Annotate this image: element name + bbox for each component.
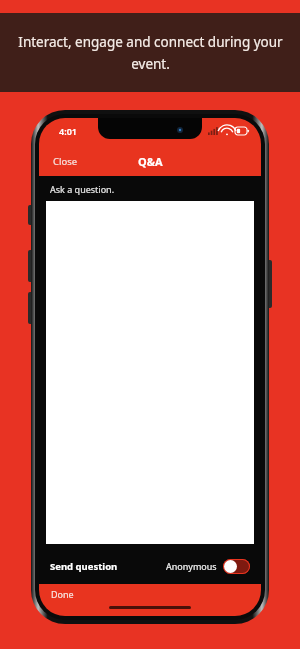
staticText: Close [53, 155, 78, 168]
staticText: 4:01 [59, 125, 77, 137]
staticText: Interact, engage and connect during your… [18, 33, 283, 73]
button[interactable]: Close [39, 150, 92, 173]
button[interactable]: Anonymous toggle [223, 559, 250, 574]
button[interactable]: Done [39, 584, 84, 604]
staticText: Done [51, 588, 74, 600]
staticText: Ask a question. [50, 183, 115, 195]
staticText: Anonymous [166, 560, 217, 572]
staticText: Q&A [138, 154, 163, 169]
staticText: Send question [50, 560, 118, 573]
button[interactable]: Send question [50, 560, 118, 573]
